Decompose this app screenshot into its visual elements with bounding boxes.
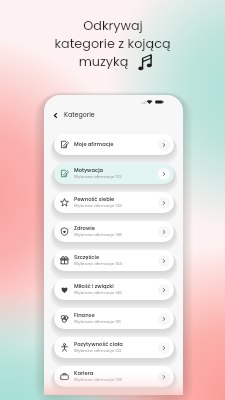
button[interactable]: Kariera	[54, 366, 174, 387]
staticText: Pozytywność ciała	[74, 341, 123, 348]
button[interactable]: Pozytywność ciała	[54, 337, 174, 358]
staticText: Kategorie	[64, 110, 95, 119]
staticText: Miłość i związki	[74, 283, 114, 290]
staticText: Wybrane afirmacje 146	[74, 290, 122, 296]
staticText: Wybrane afirmacje 104	[74, 261, 122, 267]
button[interactable]: Back	[50, 110, 60, 120]
staticText: Moje afirmacje	[74, 141, 114, 148]
staticText: Wybrane afirmacje 158	[74, 377, 122, 383]
staticText: Szczęście	[74, 254, 100, 261]
staticText: Wybrane afirmacje 152	[74, 174, 122, 180]
staticText: muzyką	[0, 53, 216, 71]
staticText: Kariera	[74, 370, 94, 377]
staticText: Wybrane afirmacje 122	[74, 348, 122, 354]
staticText: Finanse	[74, 312, 95, 319]
staticText: Motywacja	[74, 167, 104, 174]
button[interactable]: Moje afirmacje	[54, 134, 174, 155]
button[interactable]: Finanse	[54, 308, 174, 329]
staticText: Odkrywaj	[83, 17, 143, 35]
button[interactable]: Motywacja	[54, 163, 174, 184]
staticText: Wybrane afirmacje 129	[74, 203, 122, 209]
staticText: Pewność siebie	[74, 196, 115, 203]
staticText: Wybrane afirmacje 191	[74, 319, 121, 325]
button[interactable]: Szczęście	[54, 250, 174, 271]
staticText: Wybrane afirmacje 138	[74, 232, 122, 238]
button[interactable]: Miłość i związki	[54, 279, 174, 300]
staticText: kategorie z kojącą	[54, 35, 171, 53]
button[interactable]: Pewność siebie	[54, 192, 174, 213]
button[interactable]: Zdrowie	[54, 221, 174, 242]
staticText: Zdrowie	[74, 225, 95, 232]
